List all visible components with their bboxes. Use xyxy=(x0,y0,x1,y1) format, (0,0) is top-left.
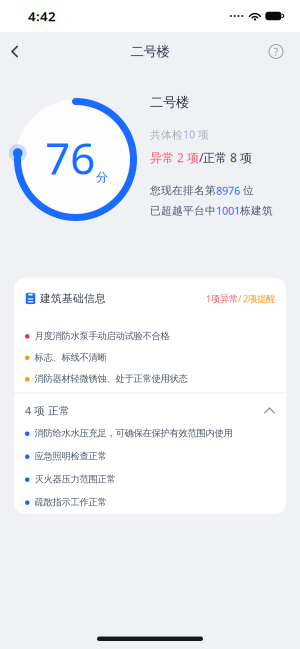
staticText: / xyxy=(199,149,203,165)
button[interactable]: 4 项 正常 xyxy=(14,393,286,427)
staticText: 位 xyxy=(240,184,254,197)
staticText: 疏散指示工作正常 xyxy=(34,496,106,508)
staticText: 消防给水水压充足，可确保在保护有效范围内使用 xyxy=(34,427,232,439)
staticText: 4:42 xyxy=(28,7,56,25)
staticText: 已超越平台中 xyxy=(150,204,216,217)
staticText: 1项异常 xyxy=(206,292,238,305)
staticText: 您现在排名第 xyxy=(150,184,216,197)
staticText: ? xyxy=(273,44,278,59)
staticText: 月度消防水泵手动启动试验不合格 xyxy=(34,330,169,342)
staticText: 8976 xyxy=(216,183,240,198)
staticText: 异常 2 项 xyxy=(150,149,199,165)
staticText: / xyxy=(238,292,243,305)
staticText: 二号楼 xyxy=(150,94,189,110)
staticText: 4 项 正常 xyxy=(25,403,70,418)
staticText: 应急照明检查正常 xyxy=(34,450,106,462)
staticText: 建筑基础信息 xyxy=(40,292,106,305)
staticText: 灭火器压力范围正常 xyxy=(34,473,115,485)
staticText: 栋建筑 xyxy=(240,204,273,217)
staticText: 1001 xyxy=(216,204,240,218)
staticText: 标志、标线不清晰 xyxy=(34,352,106,363)
staticText: 正常 8 项 xyxy=(203,149,252,165)
staticText: 共体检10 项 xyxy=(150,127,209,142)
staticText: 76 xyxy=(45,128,95,187)
button[interactable]: Help xyxy=(258,33,300,69)
staticText: 二号楼 xyxy=(130,43,169,60)
staticText: 分 xyxy=(96,170,108,185)
staticText: 2项提醒 xyxy=(243,292,275,305)
button[interactable]: Back xyxy=(0,33,30,69)
staticText: 消防器材轻微锈蚀、处于正常使用状态 xyxy=(34,373,187,384)
